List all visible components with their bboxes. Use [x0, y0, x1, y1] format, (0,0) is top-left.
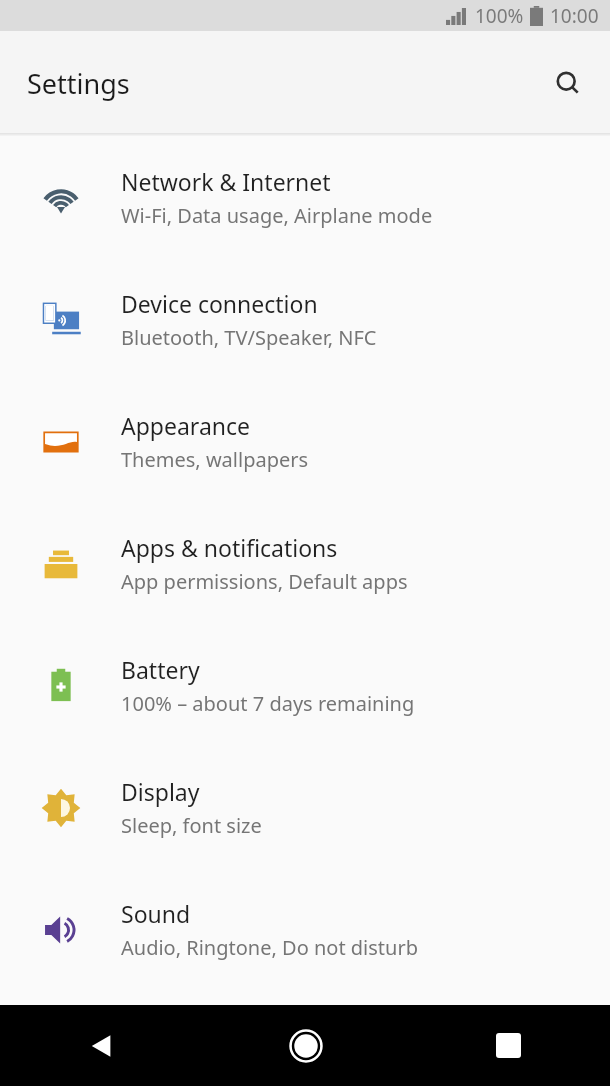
staticText: Themes, wallpapers	[121, 446, 309, 473]
button[interactable]: Display	[0, 747, 610, 869]
staticText: 100%	[475, 3, 524, 29]
staticText: Display	[121, 776, 200, 807]
staticText: 10:00	[550, 3, 599, 29]
staticText: Sound	[121, 898, 191, 929]
staticText: Apps & notifications	[121, 532, 338, 563]
staticText: Settings	[27, 65, 130, 102]
staticText: Audio, Ringtone, Do not disturb	[121, 934, 418, 961]
button[interactable]: Back	[0, 1005, 204, 1086]
button[interactable]: Network & Internet	[0, 137, 610, 259]
staticText: Appearance	[121, 410, 251, 441]
staticText: App permissions, Default apps	[121, 568, 408, 595]
staticText: Sleep, font size	[121, 812, 262, 839]
button[interactable]: Recent apps	[407, 1005, 610, 1086]
staticText: 100% – about 7 days remaining	[121, 690, 415, 717]
staticText: Network & Internet	[121, 166, 331, 197]
staticText: Wi-Fi, Data usage, Airplane mode	[121, 202, 433, 229]
button[interactable]: Search	[545, 60, 593, 108]
button[interactable]: Battery	[0, 625, 610, 747]
button[interactable]: Appearance	[0, 381, 610, 503]
staticText: Device connection	[121, 288, 318, 319]
button[interactable]: Home	[204, 1005, 407, 1086]
staticText: Battery	[121, 654, 200, 685]
button[interactable]: Apps & notifications	[0, 503, 610, 625]
staticText: Bluetooth, TV/Speaker, NFC	[121, 324, 377, 351]
button[interactable]: Device connection	[0, 259, 610, 381]
button[interactable]: Sound	[0, 869, 610, 991]
